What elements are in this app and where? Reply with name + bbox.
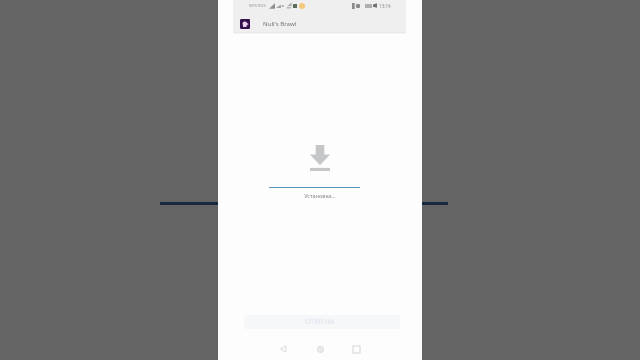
staticText: Установка... — [304, 192, 336, 199]
button[interactable]: Recents — [345, 338, 367, 360]
button[interactable]: Back — [272, 338, 294, 360]
staticText: Null's Brawl — [263, 19, 297, 27]
staticText: MTS RUS — [249, 3, 266, 8]
button[interactable]: Home — [309, 338, 331, 360]
staticText: ОТМЕНА — [305, 317, 335, 327]
staticText: 13:14 — [379, 3, 391, 9]
